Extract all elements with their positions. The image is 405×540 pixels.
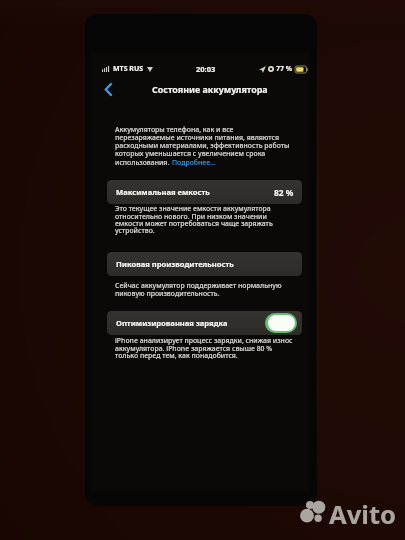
- staticText: Это текущее значение емкости аккумулятор…: [115, 204, 294, 235]
- button[interactable]: Оптимизированная зарядка: [107, 311, 302, 335]
- staticText: Пиковая производительность: [116, 259, 234, 269]
- staticText: Состояние аккумулятора: [152, 83, 268, 95]
- staticText: iPhone анализирует процесс зарядки, сниж…: [115, 336, 294, 360]
- staticText: Максимальная емкость: [116, 187, 210, 197]
- staticText: Avito: [329, 497, 397, 531]
- button[interactable]: Максимальная емкость: [107, 180, 302, 204]
- other: Avito: [299, 497, 399, 531]
- button[interactable]: Оптимизированная зарядка, включено: [265, 313, 297, 333]
- staticText: MTS RUS: [113, 64, 144, 74]
- staticText: Сейчас аккумулятор поддерживает нормальн…: [115, 281, 294, 298]
- button[interactable]: Назад: [100, 82, 115, 97]
- button[interactable]: Подробнее...: [172, 158, 216, 167]
- staticText: 77 %: [276, 64, 293, 74]
- button[interactable]: Пиковая производительность: [107, 252, 302, 276]
- staticText: 82 %: [274, 187, 294, 198]
- staticText: 20:03: [196, 64, 216, 74]
- staticText: Подробнее...: [172, 158, 216, 167]
- staticText: использования.: [115, 158, 172, 167]
- staticText: Оптимизированная зарядка: [116, 318, 228, 328]
- staticText: Аккумуляторы телефона, как и все перезар…: [115, 125, 294, 158]
